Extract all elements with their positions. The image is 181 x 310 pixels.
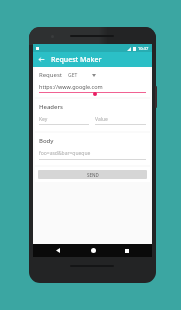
staticText: Headers	[39, 103, 63, 111]
staticText: SEND	[87, 172, 99, 178]
staticText: https://www.google.com	[39, 83, 103, 90]
staticText: Body	[39, 137, 54, 145]
button[interactable]: Key	[39, 116, 89, 125]
staticText: Key	[39, 116, 48, 123]
button[interactable]: foo=asd&bar=queque	[39, 150, 146, 160]
staticText: 10:37	[138, 46, 149, 51]
staticText: Request	[39, 71, 62, 79]
button[interactable]: Navigate up	[36, 54, 47, 65]
button[interactable]: Back	[49, 244, 67, 257]
button[interactable]: SEND	[38, 170, 147, 179]
button[interactable]: Home	[84, 244, 102, 257]
staticText: foo=asd&bar=queque	[39, 150, 91, 157]
staticText: Request Maker	[51, 55, 102, 65]
button[interactable]: Recent apps	[118, 244, 136, 257]
button[interactable]: GET	[67, 72, 97, 79]
staticText: GET	[68, 72, 78, 79]
button[interactable]: Value	[95, 116, 146, 125]
staticText: Value	[95, 116, 108, 123]
